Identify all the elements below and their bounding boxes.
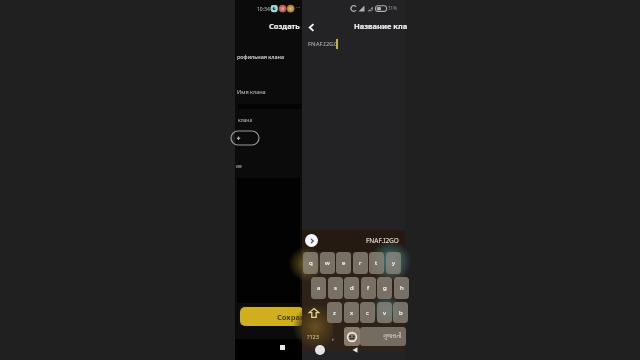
button[interactable]: y [386,252,401,274]
button[interactable]: ?123 [304,327,322,346]
button[interactable]: Назад [302,18,320,36]
staticText: s [334,284,337,292]
staticText: ?123 [307,333,319,340]
staticText: d [350,284,354,292]
staticText: 10:34 [257,6,270,13]
button[interactable]: z [327,302,342,323]
staticText: v [383,309,387,317]
staticText: ગુજરાતી [383,334,402,340]
button[interactable]: e [336,252,351,274]
button[interactable]: t [369,252,384,274]
staticText: , [332,331,335,342]
staticText: c [366,309,369,317]
button[interactable]: Домой [315,345,325,355]
button[interactable]: r [353,252,368,274]
staticText: Создать [269,21,300,31]
staticText: клана [238,117,253,124]
button[interactable]: x [344,302,359,323]
staticText: b [399,309,403,317]
button[interactable]: d [344,277,359,299]
button[interactable]: Эмодзи [344,327,360,346]
button[interactable]: Сохран [240,307,304,326]
staticText: h [400,284,404,292]
button[interactable]: Назад [350,345,360,355]
staticText: t [375,259,378,267]
button[interactable]: Shift [302,302,326,323]
button[interactable]: q [303,252,318,274]
staticText: y [392,259,396,267]
staticText: q [309,259,313,267]
staticText: Имя клана [237,88,266,95]
staticText: рофильная клана [237,53,284,60]
staticText: FNAF.I2GO [308,40,339,48]
staticText: z [333,309,336,317]
staticText: g [383,284,387,292]
button[interactable]: v [377,302,392,323]
button[interactable]: s [328,277,343,299]
staticText: x [350,309,354,317]
staticText: r [359,259,362,267]
button[interactable]: Показать подсказки [305,234,318,247]
staticText: ие [236,163,242,170]
button[interactable]: Добавить изображение [231,131,259,145]
button[interactable]: Пробел [360,327,406,346]
button[interactable]: , [323,327,343,346]
staticText: 31% [388,5,397,11]
staticText: e [342,259,346,267]
staticText: ··· [296,3,301,10]
button[interactable]: a [311,277,326,299]
button[interactable]: FNAF.I2GO [366,236,399,245]
staticText: Название кла [354,21,408,31]
button[interactable]: h [394,277,409,299]
button[interactable]: c [360,302,375,323]
staticText: a [317,284,321,292]
button[interactable]: b [393,302,408,323]
button[interactable]: g [377,277,392,299]
button[interactable] [237,178,300,303]
button[interactable]: w [320,252,335,274]
staticText: w [325,259,330,267]
staticText: f [367,284,370,292]
staticText: Сохран [277,312,304,322]
button[interactable]: f [361,277,376,299]
